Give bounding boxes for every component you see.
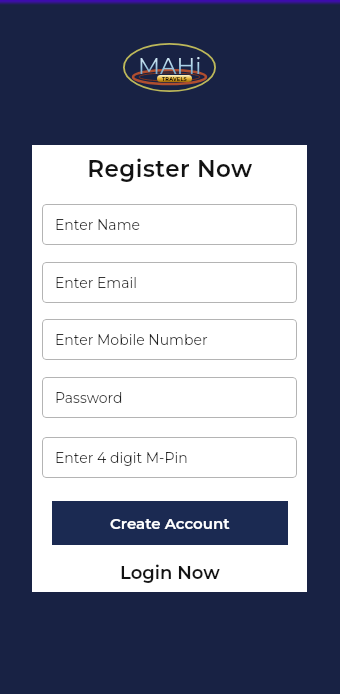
staticText: Create Account xyxy=(110,514,230,532)
button[interactable]: Create Account xyxy=(52,501,288,545)
button[interactable]: Enter Name xyxy=(42,204,297,245)
staticText: Enter Name xyxy=(55,216,140,233)
staticText: TRAVELS xyxy=(162,76,188,82)
staticText: Enter Mobile Number xyxy=(55,331,208,348)
button[interactable]: Login Now xyxy=(110,559,230,587)
staticText: Enter 4 digit M-Pin xyxy=(55,449,188,466)
staticText: Register Now xyxy=(87,155,253,183)
staticText: Login Now xyxy=(120,562,220,584)
button[interactable]: Enter 4 digit M-Pin xyxy=(42,437,297,478)
button[interactable]: Enter Email xyxy=(42,262,297,303)
staticText: Enter Email xyxy=(55,274,137,291)
staticText: Password xyxy=(55,389,123,406)
button[interactable]: Password xyxy=(42,377,297,418)
button[interactable]: Enter Mobile Number xyxy=(42,319,297,360)
staticText: MAHi xyxy=(138,52,202,80)
